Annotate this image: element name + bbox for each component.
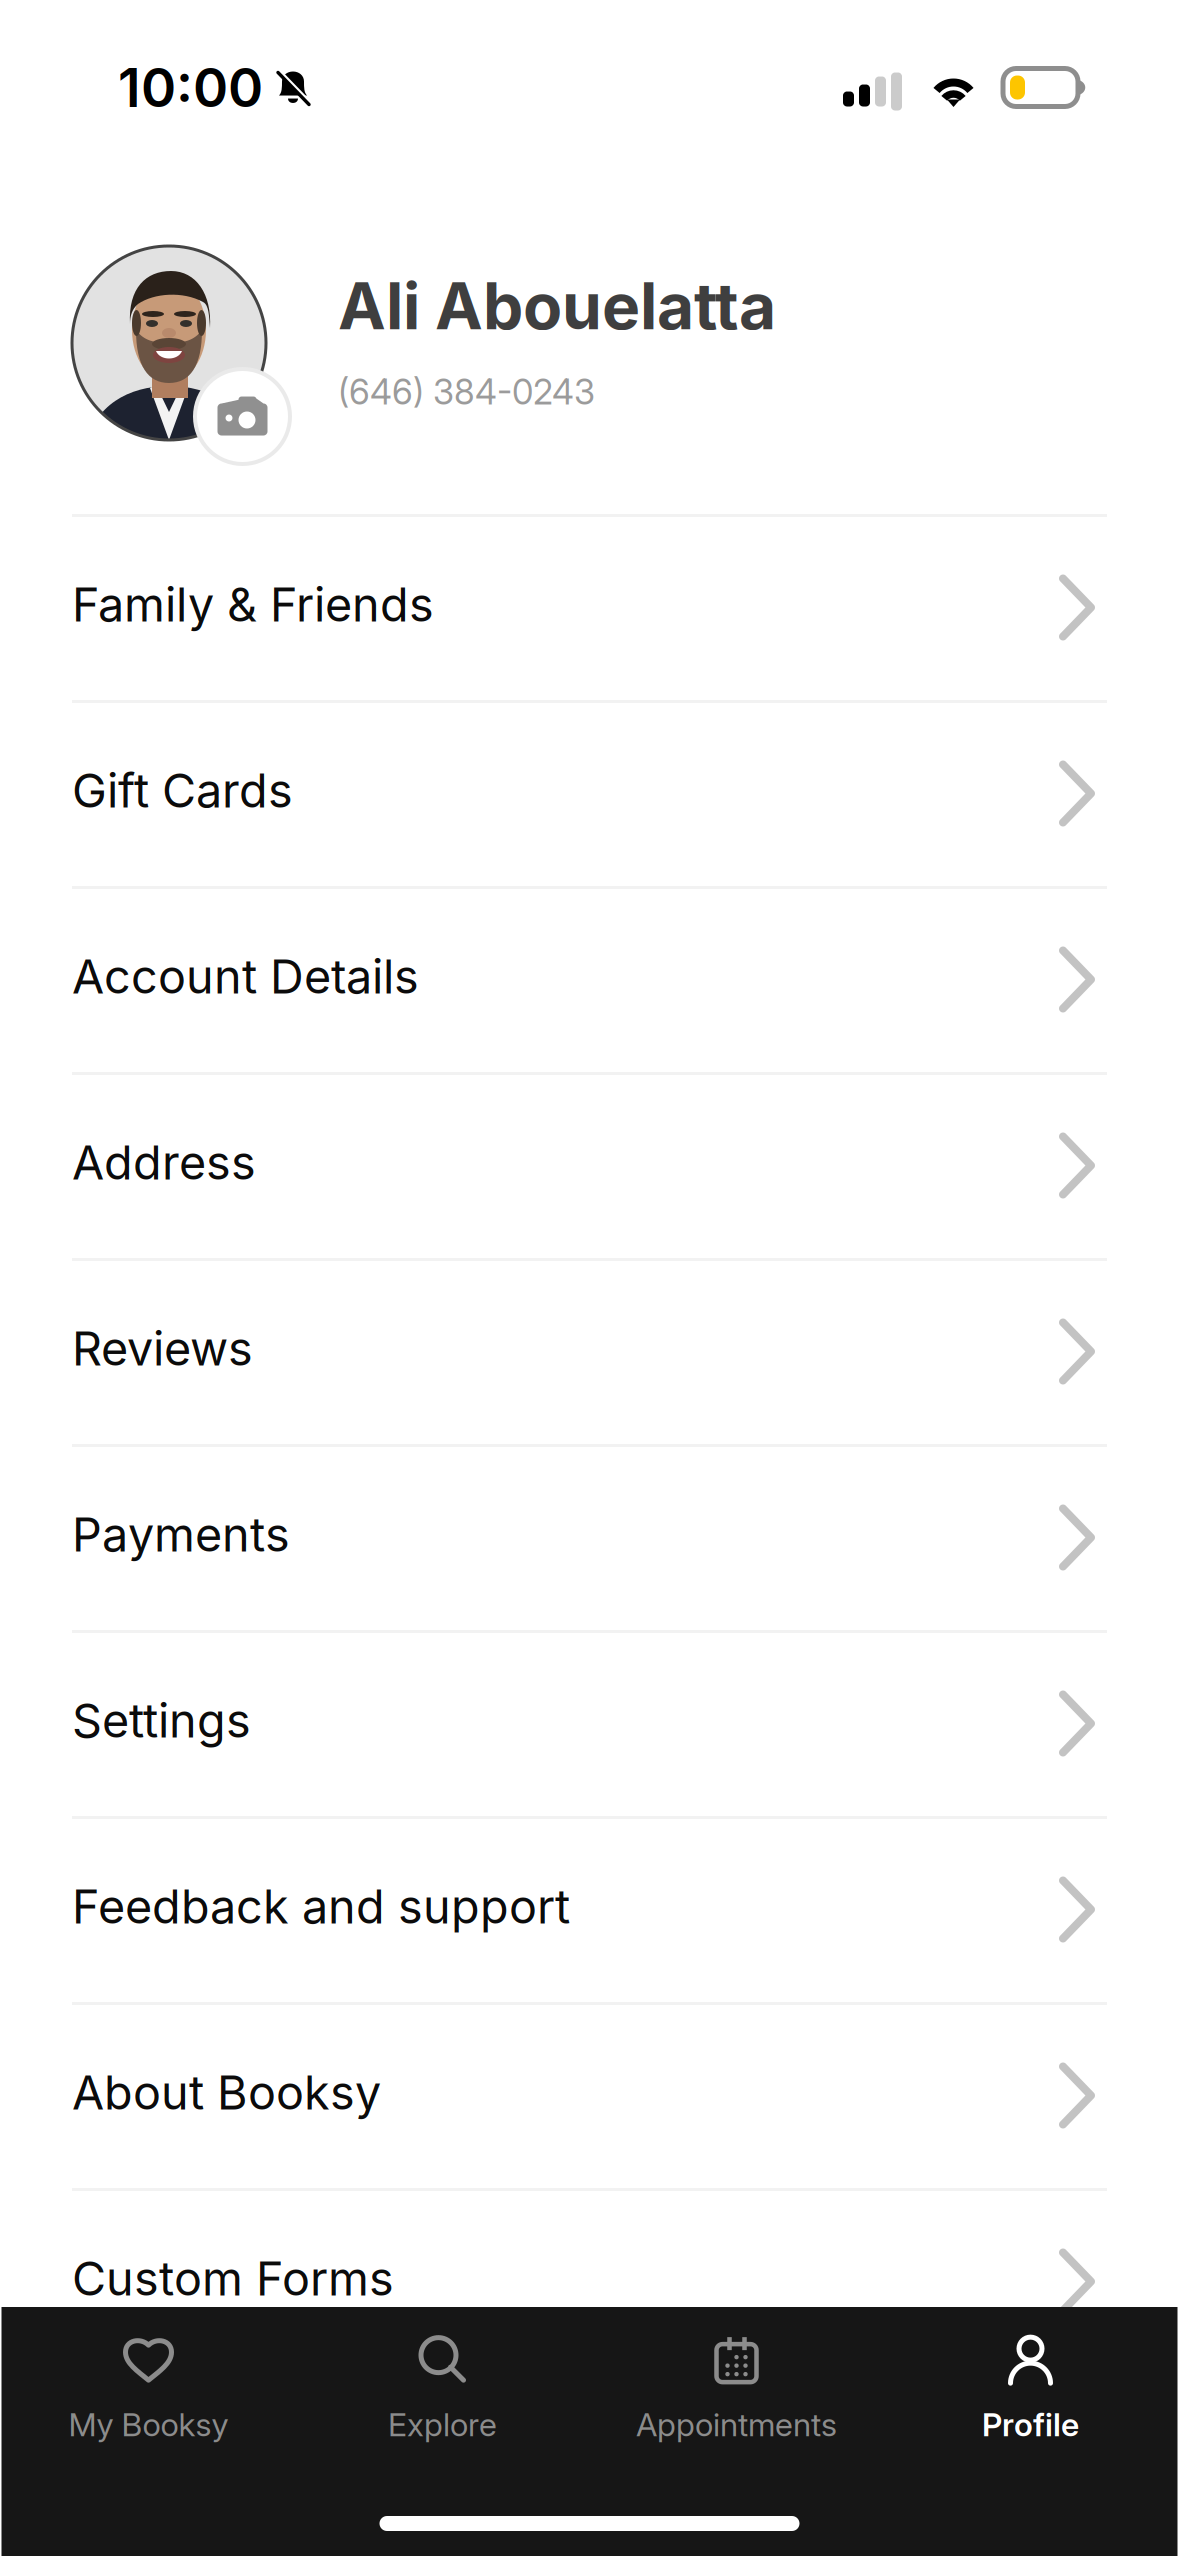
staticText: Profile [982,2405,1079,2444]
button[interactable]: My Booksy [1,2304,295,2449]
staticText: Explore [388,2405,497,2444]
staticText: Address [72,1134,256,1191]
button[interactable]: Feedback and support [0,1819,1179,2002]
button[interactable]: Custom Forms [0,2191,1179,2374]
staticText: Gift Cards [72,762,293,819]
button[interactable]: Settings [0,1633,1179,1816]
staticText: 10:00 [118,55,263,120]
button[interactable]: Explore [295,2304,589,2449]
staticText: Account Details [72,948,419,1005]
button[interactable]: Account Details [0,889,1179,1072]
button[interactable]: Appointments [589,2304,883,2449]
button[interactable]: Profile [883,2304,1177,2449]
button[interactable]: Reviews [0,1261,1179,1444]
button[interactable]: Address [0,1075,1179,1258]
staticText: Ali Abouelatta [338,267,776,345]
staticText: Payments [72,1506,290,1563]
button[interactable]: Change profile photo [72,246,290,464]
staticText: My Booksy [68,2405,228,2444]
staticText: Reviews [72,1320,253,1377]
button[interactable]: Family & Friends [0,517,1179,700]
staticText: About Booksy [72,2064,381,2121]
staticText: Settings [72,1692,251,1749]
staticText: Family & Friends [72,576,434,633]
staticText: (646) 384-0243 [338,371,595,413]
button[interactable]: Payments [0,1447,1179,1630]
button[interactable]: About Booksy [0,2005,1179,2188]
staticText: Custom Forms [72,2250,394,2307]
staticText: Feedback and support [72,1878,570,1935]
staticText: Appointments [636,2405,837,2444]
button[interactable]: Gift Cards [0,703,1179,886]
